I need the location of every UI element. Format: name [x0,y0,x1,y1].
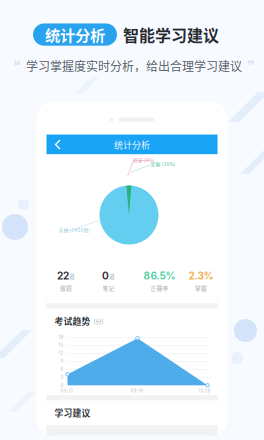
staticText: 未做 (1400题) [58,226,90,233]
staticText: 学习建议 [54,406,90,419]
staticText: 智能学习建议 [123,23,219,46]
staticText: 掌握 (30%) [150,160,175,167]
staticText: 考试趋势 [54,314,90,327]
staticText: 12 [58,350,63,356]
staticText: 道 [69,272,75,280]
staticText: 09/15 [60,388,73,393]
staticText: 86.5% [143,270,175,282]
staticText: 2.3% [188,270,213,282]
staticText: 统计分析 [114,138,150,151]
staticText: 09/19 [130,388,143,393]
staticText: 15 [58,342,63,348]
staticText: 做题 [60,284,72,292]
staticText: 11/28 [198,388,210,393]
staticText: 18 [58,334,63,340]
staticText: 掌握 [195,284,207,292]
staticText: 6 [60,366,63,372]
staticText: ❝ [13,57,21,74]
staticText: (分) [93,316,103,325]
staticText: 22 [57,270,69,282]
staticText: 0 [102,270,109,282]
staticText: 正确率 [150,284,168,292]
staticText: 0 [60,382,63,388]
staticText: 笔记 [102,284,114,292]
staticText: 统计分析 [45,23,105,46]
staticText: ❞ [247,57,255,74]
staticText: 错误 (0%) [132,156,154,163]
staticText: 3 [60,374,63,380]
staticText: 9 [60,358,63,364]
button[interactable]: 统计分析 [46,134,217,154]
staticText: 学习掌握度实时分析，给出合理学习建议 [26,57,242,75]
staticText: 道 [109,272,115,280]
